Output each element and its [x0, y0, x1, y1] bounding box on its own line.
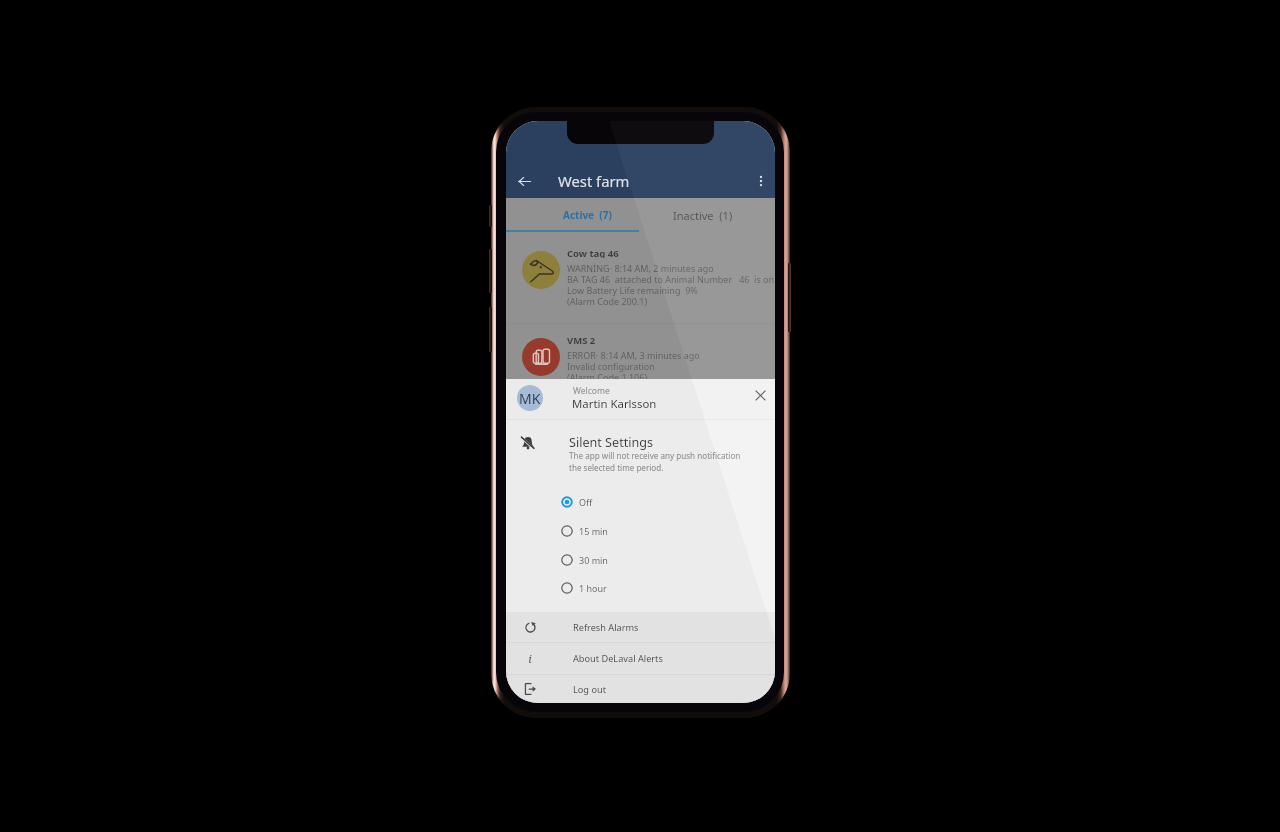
button[interactable]: Cow tag 46 [506, 232, 775, 324]
button[interactable]: Inactive (1) [636, 198, 770, 232]
button[interactable]: Refresh Alarms [506, 612, 775, 642]
staticText: Silent Settings [569, 434, 654, 450]
staticText: 1 hour [579, 582, 607, 594]
button[interactable]: More options [748, 168, 774, 194]
staticText: West farm [558, 171, 630, 191]
button[interactable]: Back [511, 168, 537, 194]
staticText: Inactive (1) [673, 208, 733, 223]
button[interactable]: Off [506, 488, 775, 516]
staticText: WARNING· 8:14 AM, 2 minutes ago BA TAG 4… [567, 262, 775, 308]
staticText: ERROR· 8:14 AM, 3 minutes ago Invalid co… [567, 349, 700, 384]
staticText: Refresh Alarms [573, 621, 639, 634]
staticText: About DeLaval Alerts [573, 652, 663, 665]
staticText: 30 min [579, 554, 608, 566]
button[interactable]: 30 min [506, 546, 775, 574]
staticText: i [528, 651, 532, 667]
button[interactable]: Active (7) [520, 198, 654, 232]
button[interactable]: Log out [506, 675, 775, 703]
button[interactable]: VMS 2 [506, 325, 775, 417]
button[interactable]: 15 min [506, 517, 775, 545]
staticText: Cow tag 46 [567, 247, 619, 258]
staticText: VMS 2 [567, 334, 596, 345]
staticText: MK [519, 389, 541, 408]
button[interactable]: Close [748, 383, 772, 407]
button[interactable]: i [506, 643, 775, 674]
staticText: 15 min [579, 525, 608, 537]
staticText: Martin Karlsson [572, 396, 657, 409]
staticText: Active (7) [563, 208, 612, 222]
staticText: Off [579, 496, 593, 508]
staticText: Welcome [573, 385, 610, 397]
staticText: The app will not receive any push notifi… [569, 450, 741, 473]
staticText: Log out [573, 683, 606, 696]
button[interactable]: 1 hour [506, 574, 775, 602]
